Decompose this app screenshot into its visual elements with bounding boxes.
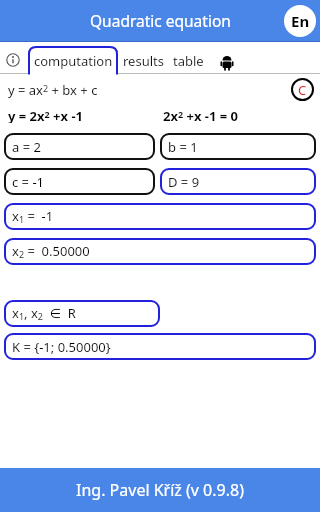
staticText: x1 = -1	[12, 207, 54, 226]
staticText: b = 1	[168, 138, 198, 156]
button[interactable]: x2 = 0.50000	[4, 238, 316, 265]
button[interactable]: results	[120, 47, 166, 74]
staticText: K = {-1; 0.50000}	[12, 338, 111, 356]
staticText: c = -1	[12, 173, 45, 191]
staticText: y = ax2 + bx + c	[8, 81, 98, 99]
button[interactable]: D = 9	[160, 168, 316, 195]
button[interactable]: c = -1	[4, 168, 155, 195]
staticText: x2 = 0.50000	[12, 242, 90, 261]
button[interactable]: x1, x2 ∈ R	[4, 300, 160, 327]
staticText: Quadratic equation	[90, 10, 231, 31]
staticText: D = 9	[168, 173, 200, 191]
button[interactable]: x1 = -1	[4, 203, 316, 230]
button[interactable]: K = {-1; 0.50000}	[4, 333, 316, 360]
button[interactable]: a = 2	[4, 133, 155, 160]
staticText: C	[298, 81, 307, 99]
staticText: y = 2x2 +x -1	[8, 107, 84, 123]
staticText: a = 2	[12, 138, 41, 156]
button[interactable]: computation	[29, 47, 117, 75]
button[interactable]: b = 1	[160, 133, 316, 160]
staticText: En	[291, 11, 310, 31]
button[interactable]: Ing. Pavel Kříž (v 0.9.8)	[0, 468, 320, 512]
staticText: Ing. Pavel Kříž (v 0.9.8)	[76, 479, 244, 501]
staticText: x1, x2 ∈ R	[12, 304, 76, 323]
staticText: results	[123, 52, 164, 70]
staticText: 2x2 +x -1 = 0	[163, 107, 239, 123]
button[interactable]: C	[291, 78, 314, 101]
button[interactable]: En	[284, 5, 316, 37]
button[interactable]: table	[168, 47, 208, 74]
staticText: table	[173, 52, 204, 70]
staticText: computation	[34, 52, 113, 70]
